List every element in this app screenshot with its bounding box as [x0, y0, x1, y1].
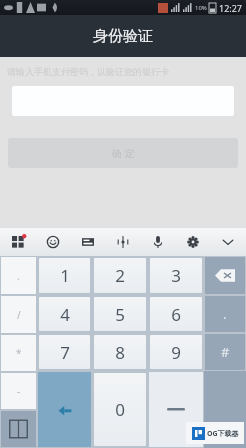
staticText: OG下载器 — [207, 429, 239, 439]
button[interactable]: Enter — [38, 372, 91, 447]
staticText: 9 — [171, 341, 181, 364]
staticText: 8 — [115, 341, 125, 364]
staticText: 身份验证 — [93, 27, 153, 46]
button[interactable]: Space — [149, 372, 203, 447]
staticText: - — [17, 384, 21, 398]
button[interactable]: # — [205, 334, 245, 370]
button[interactable]: Backspace — [205, 257, 245, 294]
button[interactable]: 5 — [94, 297, 146, 331]
staticText: / — [17, 308, 21, 322]
staticText: 请输入手机支付密码，以验证您的银行卡 — [7, 66, 169, 77]
staticText: 4 — [60, 303, 70, 326]
staticText: 3 — [171, 264, 181, 287]
button[interactable]: 3 — [150, 258, 202, 293]
button[interactable]: Voice input — [143, 228, 173, 256]
button[interactable]: 7 — [39, 335, 90, 369]
button[interactable]: Emoji — [38, 228, 68, 256]
button[interactable]: Handwriting — [108, 228, 138, 256]
button[interactable]: 1 — [39, 258, 90, 293]
button[interactable]: / — [1, 296, 36, 333]
staticText: 7 — [60, 341, 70, 364]
button[interactable] — [204, 371, 246, 448]
button[interactable]: 0 — [94, 373, 146, 446]
staticText: 6 — [171, 303, 181, 326]
staticText: 1 — [60, 264, 70, 287]
button[interactable]: 4 — [39, 297, 90, 331]
button[interactable]: 2 — [94, 258, 146, 293]
staticText: 0 — [115, 398, 125, 421]
button[interactable]: Settings — [178, 228, 208, 256]
button[interactable]: 6 — [150, 297, 202, 331]
staticText: 5 — [115, 303, 125, 326]
staticText: . — [223, 305, 227, 323]
staticText: 确 定 — [112, 146, 135, 160]
button[interactable]: * — [1, 335, 36, 371]
staticText: * — [16, 346, 22, 360]
button[interactable]: 9 — [150, 335, 202, 369]
staticText: 2 — [115, 264, 125, 287]
button[interactable]: Hide keyboard — [213, 228, 243, 256]
staticText: 12:27 — [219, 2, 243, 14]
staticText: 10% — [195, 4, 207, 12]
staticText: # — [221, 343, 230, 361]
staticText: . — [17, 269, 20, 283]
button[interactable]: Apps — [3, 228, 33, 256]
button[interactable]: Keyboard — [73, 228, 103, 256]
button[interactable]: Switch keyboard — [1, 411, 36, 447]
button[interactable]: 8 — [94, 335, 146, 369]
